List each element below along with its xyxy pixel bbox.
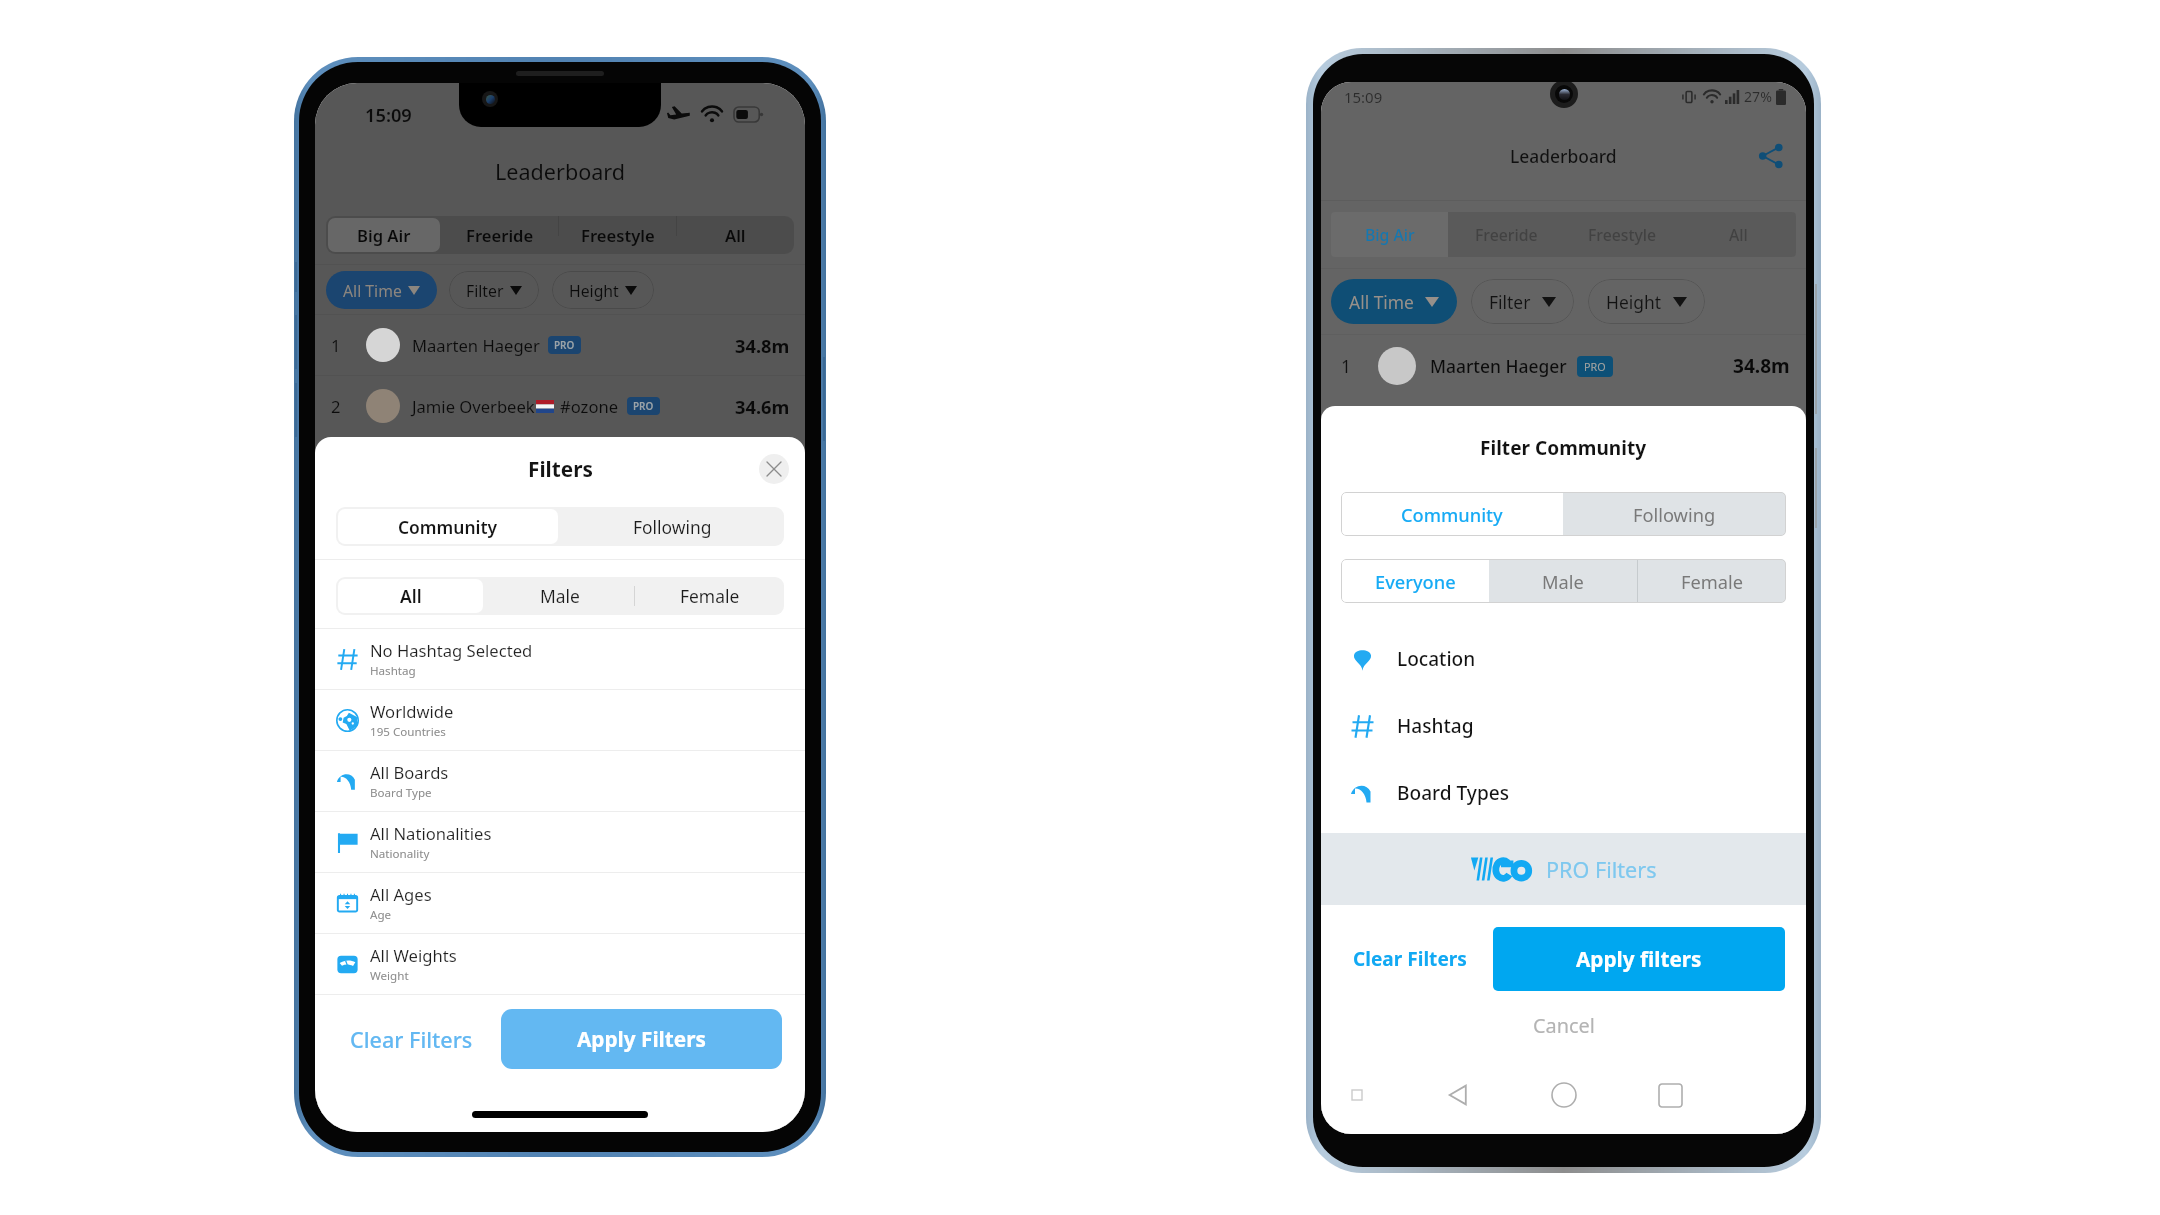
staticText: Freestyle	[581, 224, 655, 247]
button[interactable]: Community	[338, 509, 558, 544]
staticText: Jamie Overbeek	[412, 395, 535, 418]
staticText: Filter	[466, 280, 504, 301]
staticText: PRO	[1584, 359, 1606, 374]
staticText: Weight	[370, 968, 409, 984]
button[interactable]: Following	[560, 507, 784, 546]
staticText: PRO Filters	[1546, 855, 1657, 884]
staticText: 34.6m	[735, 394, 790, 419]
button[interactable]: Female	[1638, 559, 1786, 603]
staticText: Freeride	[1475, 224, 1538, 245]
button[interactable]: 1	[315, 315, 805, 375]
staticText: All	[1729, 224, 1748, 245]
staticText: Clear Filters	[350, 1025, 473, 1054]
staticText: Community	[398, 515, 498, 539]
button[interactable]: Hide keyboard	[1341, 1079, 1373, 1111]
button[interactable]: Close	[759, 454, 789, 484]
button[interactable]: Board Types	[1321, 759, 1806, 826]
staticText: All	[400, 584, 422, 608]
staticText: 15:09	[1344, 87, 1383, 107]
staticText: Worldwide	[370, 700, 454, 723]
staticText: Female	[680, 584, 740, 608]
staticText: PRO	[633, 399, 654, 413]
staticText: Leaderboard	[495, 157, 626, 186]
button[interactable]: Clear Filters	[343, 1015, 480, 1064]
staticText: Following	[1633, 502, 1716, 527]
staticText: 27%	[1744, 87, 1772, 106]
button[interactable]: Everyone	[1341, 559, 1489, 603]
staticText: Cancel	[1533, 1012, 1595, 1039]
staticText: PRO	[554, 338, 575, 352]
button[interactable]: Freestyle	[561, 218, 674, 252]
button[interactable]: No Hashtag Selected	[315, 629, 805, 689]
button[interactable]: All Nationalities	[315, 812, 805, 872]
staticText: Female	[1681, 569, 1744, 594]
button[interactable]: Following	[1563, 492, 1786, 536]
staticText: #ozone	[560, 395, 619, 418]
staticText: All	[725, 224, 746, 247]
staticText: 1	[1341, 354, 1351, 378]
staticText: 195 Countries	[370, 724, 446, 740]
button[interactable]: Freestyle	[1564, 212, 1680, 257]
button[interactable]: All Time	[1331, 279, 1457, 324]
button[interactable]: Male	[1489, 559, 1637, 603]
button[interactable]: Recents	[1648, 1073, 1692, 1117]
staticText: Height	[569, 280, 619, 301]
button[interactable]: Freeride	[444, 218, 556, 252]
button[interactable]: Worldwide	[315, 690, 805, 750]
staticText: Community	[1401, 502, 1503, 527]
staticText: Following	[633, 515, 712, 539]
button[interactable]: All Ages	[315, 873, 805, 933]
button[interactable]: All Boards	[315, 751, 805, 811]
staticText: All Time	[343, 280, 402, 301]
staticText: 2	[331, 395, 341, 418]
button[interactable]: 1	[1321, 335, 1806, 397]
button[interactable]: Community	[1341, 492, 1563, 536]
staticText: Male	[540, 584, 580, 608]
staticText: Filter	[1489, 290, 1531, 314]
staticText: Board Types	[1397, 780, 1509, 806]
staticText: Hashtag	[1397, 713, 1474, 739]
button[interactable]: Filter	[449, 271, 539, 309]
staticText: Big Air	[357, 224, 411, 247]
button[interactable]: Back	[1436, 1073, 1480, 1117]
button[interactable]: All	[338, 579, 483, 613]
staticText: Clear Filters	[1353, 946, 1467, 972]
staticText: Hashtag	[370, 663, 416, 679]
button[interactable]: Share	[1750, 135, 1792, 177]
button[interactable]: Big Air	[328, 218, 440, 252]
staticText: No Hashtag Selected	[370, 639, 533, 662]
button[interactable]: Freeride	[1448, 212, 1564, 257]
staticText: All Time	[1349, 290, 1414, 314]
button[interactable]: Hashtag	[1321, 692, 1806, 759]
button[interactable]: Home	[1542, 1073, 1586, 1117]
button[interactable]: Location	[1321, 625, 1806, 692]
button[interactable]: All	[679, 218, 792, 252]
button[interactable]: Apply Filters	[501, 1009, 782, 1069]
staticText: 1	[331, 334, 341, 357]
staticText: Apply Filters	[577, 1025, 706, 1053]
button[interactable]: Cancel	[1321, 1005, 1806, 1046]
button[interactable]: Height	[1588, 279, 1705, 324]
button[interactable]: Female	[635, 577, 784, 615]
button[interactable]: Height	[552, 271, 654, 309]
staticText: Apply filters	[1576, 945, 1702, 973]
staticText: All Ages	[370, 883, 432, 906]
button[interactable]: PRO Filters	[1321, 833, 1806, 905]
staticText: Height	[1606, 290, 1662, 314]
staticText: Age	[370, 907, 392, 923]
staticText: Freeride	[466, 224, 534, 247]
staticText: Filter Community	[1480, 435, 1647, 461]
button[interactable]: Apply filters	[1493, 927, 1785, 991]
staticText: Maarten Haeger	[412, 334, 540, 357]
button[interactable]: Male	[485, 577, 634, 615]
staticText: Male	[1542, 569, 1584, 594]
staticText: Big Air	[1365, 224, 1415, 245]
button[interactable]: Clear Filters	[1347, 936, 1473, 982]
staticText: Board Type	[370, 785, 432, 801]
button[interactable]: All Time	[326, 271, 437, 309]
button[interactable]: Big Air	[1331, 212, 1448, 257]
button[interactable]: Filter	[1471, 279, 1574, 324]
button[interactable]: 2	[315, 376, 805, 436]
button[interactable]: All Weights	[315, 934, 805, 994]
